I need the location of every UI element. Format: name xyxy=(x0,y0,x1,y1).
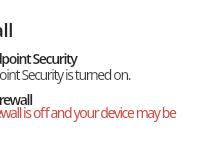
button[interactable]: Firewall xyxy=(0,87,220,142)
staticText: Firewall xyxy=(0,18,13,43)
staticText: Firewall xyxy=(0,90,32,109)
staticText: Endpoint Security xyxy=(0,49,77,68)
button[interactable]: Endpoint Security xyxy=(0,46,220,84)
staticText: Endpoint Security is turned on. xyxy=(0,65,130,84)
staticText: Firewall is off and your device may be xyxy=(0,103,176,122)
